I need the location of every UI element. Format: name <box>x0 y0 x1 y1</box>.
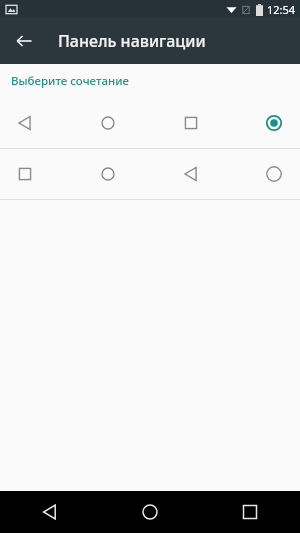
button[interactable]: Back <box>6 23 42 59</box>
button[interactable]: Back <box>0 491 100 533</box>
staticText: 12:54 <box>267 2 296 17</box>
button[interactable] <box>0 149 300 199</box>
staticText: Выберите сочетание <box>11 73 129 89</box>
button[interactable]: Recents <box>200 491 300 533</box>
button[interactable]: Home <box>100 491 200 533</box>
staticText: Панель навигации <box>58 30 206 52</box>
button[interactable] <box>0 98 300 148</box>
